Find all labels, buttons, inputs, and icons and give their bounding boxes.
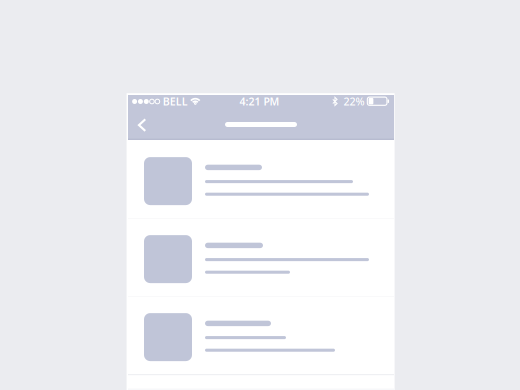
staticText: BELL xyxy=(163,94,188,109)
button[interactable] xyxy=(128,218,394,296)
button[interactable] xyxy=(128,296,394,374)
button[interactable]: Back xyxy=(128,111,156,139)
staticText: 4:21 PM xyxy=(240,94,280,108)
button[interactable] xyxy=(128,140,394,218)
staticText: 22% xyxy=(343,94,364,109)
